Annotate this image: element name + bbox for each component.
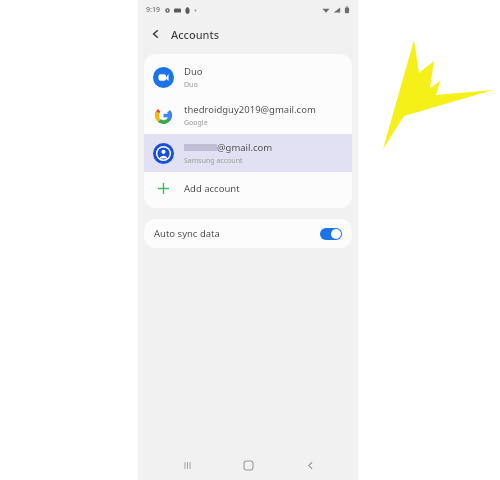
button[interactable]: Recents — [174, 452, 200, 478]
staticText: Duo — [184, 65, 203, 78]
staticText: Duo — [184, 80, 198, 90]
button[interactable]: thedroidguy2019@gmail.com — [144, 96, 352, 134]
button[interactable]: Duo — [144, 58, 352, 96]
staticText: Add account — [184, 182, 240, 195]
staticText: Accounts — [171, 27, 220, 42]
staticText: Auto sync data — [154, 227, 220, 240]
staticText: Google — [184, 118, 208, 128]
staticText: @gmail.com — [217, 141, 273, 154]
button[interactable]: Add account — [144, 172, 352, 204]
other: Auto sync data toggle — [320, 228, 342, 240]
staticText: thedroidguy2019@gmail.com — [184, 103, 316, 116]
button[interactable]: Back — [297, 452, 323, 478]
button[interactable]: @gmail.com — [144, 134, 352, 172]
staticText: 9:19 — [146, 5, 160, 15]
button[interactable]: Home — [235, 452, 261, 478]
button[interactable]: Back — [147, 25, 165, 43]
button[interactable]: Auto sync data — [144, 219, 352, 248]
staticText: Samsung account — [184, 156, 243, 166]
